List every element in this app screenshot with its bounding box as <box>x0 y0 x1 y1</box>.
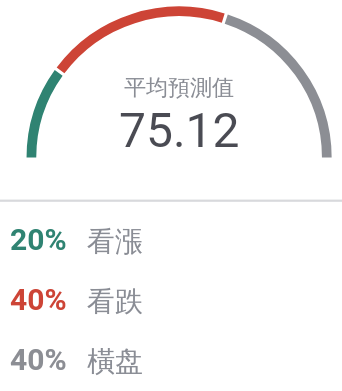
staticText: 20% <box>10 222 67 257</box>
staticText: 40% <box>10 342 67 377</box>
button[interactable]: 40% <box>0 330 342 390</box>
staticText: 看跌 <box>87 284 143 319</box>
button[interactable]: 20% <box>0 210 342 270</box>
button[interactable]: 40% <box>0 270 342 330</box>
staticText: 橫盘 <box>87 344 143 379</box>
staticText: 75.12 <box>119 102 240 158</box>
staticText: 看漲 <box>87 224 143 259</box>
staticText: 40% <box>10 282 67 317</box>
staticText: 平均預測值 <box>124 74 234 102</box>
